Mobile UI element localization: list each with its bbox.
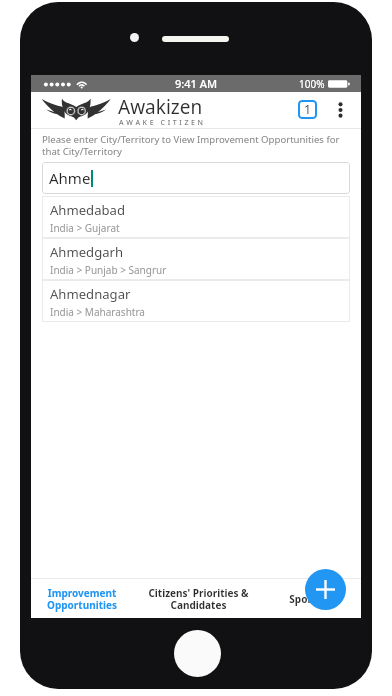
- staticText: Awakizen: [118, 94, 203, 120]
- button[interactable]: Notifications: 1: [298, 100, 317, 119]
- staticText: 9:41 AM: [175, 76, 218, 91]
- staticText: A W A K E C I T I Z E N: [119, 118, 204, 128]
- staticText: Sponsors: [289, 592, 335, 606]
- button[interactable]: More options: [328, 96, 352, 120]
- staticText: 100%: [299, 77, 325, 91]
- staticText: Please enter City/Territory to View Impr…: [42, 133, 352, 158]
- button[interactable]: Improvement Opportunities: [31, 579, 133, 618]
- staticText: Citizens' Priorities & Candidates: [148, 586, 249, 612]
- button[interactable]: Ahmedgarh: [42, 238, 350, 280]
- button[interactable]: Add: [305, 569, 346, 610]
- button[interactable]: Ahme: [42, 162, 350, 194]
- staticText: Ahmednagar: [50, 285, 131, 303]
- staticText: India > Maharashtra: [50, 305, 145, 319]
- staticText: India > Punjab > Sangrur: [50, 263, 167, 277]
- staticText: India > Gujarat: [50, 221, 120, 235]
- staticText: Ahmedgarh: [50, 243, 124, 261]
- button[interactable]: Ahmedabad: [42, 196, 350, 238]
- staticText: Ahmedabad: [50, 201, 125, 219]
- staticText: Ahme: [49, 168, 91, 188]
- button[interactable]: Ahmednagar: [42, 280, 350, 322]
- button[interactable]: Citizens' Priorities & Candidates: [133, 579, 263, 618]
- staticText: 1: [304, 101, 312, 118]
- button[interactable]: Sponsors: [263, 579, 361, 618]
- staticText: Improvement Opportunities: [47, 586, 117, 612]
